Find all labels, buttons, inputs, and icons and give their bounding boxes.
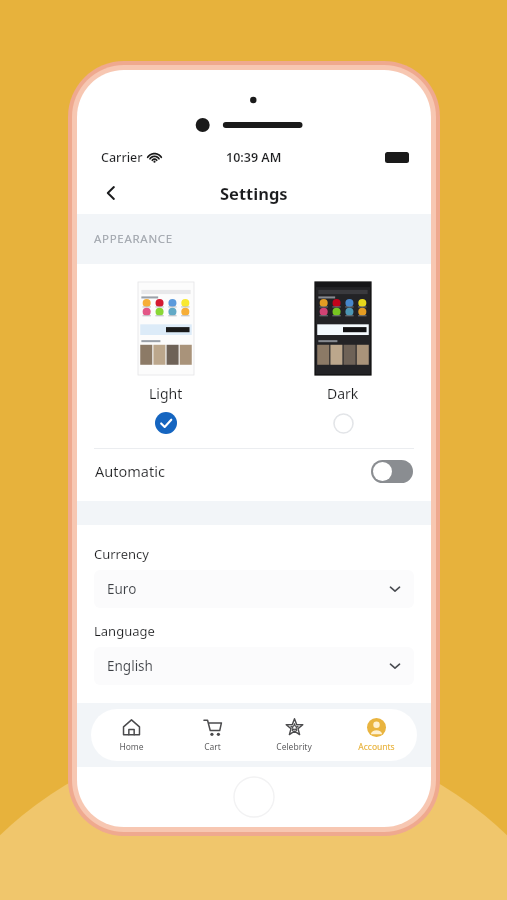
button[interactable]: Automatic <box>77 449 431 493</box>
button[interactable]: Dark <box>254 282 431 434</box>
staticText: Language <box>94 622 155 640</box>
staticText: Euro <box>107 580 137 598</box>
staticText: Accounts <box>358 741 395 753</box>
button[interactable]: English <box>94 647 414 685</box>
staticText: Cart <box>204 741 221 753</box>
staticText: Carrier <box>101 149 143 166</box>
button[interactable]: Home <box>91 709 172 761</box>
staticText: Dark <box>327 384 359 403</box>
staticText: English <box>107 657 153 675</box>
button[interactable]: Euro <box>94 570 414 608</box>
staticText: 10:39 AM <box>226 149 282 166</box>
button[interactable]: Cart <box>172 709 253 761</box>
staticText: Celebrity <box>276 741 312 753</box>
staticText: Home <box>119 741 144 753</box>
button[interactable]: Accounts <box>335 709 417 761</box>
staticText: Settings <box>220 182 288 204</box>
staticText: APPEARANCE <box>94 231 173 247</box>
button[interactable]: Celebrity <box>253 709 335 761</box>
staticText: Light <box>149 384 183 403</box>
button[interactable]: Back <box>91 173 131 213</box>
staticText: Automatic <box>95 461 165 481</box>
button[interactable]: Light <box>77 282 254 434</box>
staticText: Currency <box>94 545 149 563</box>
